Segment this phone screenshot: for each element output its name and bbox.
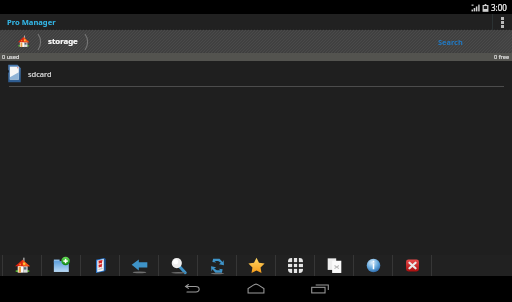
button[interactable]: Back [120, 255, 158, 276]
button[interactable]: Home [3, 255, 41, 276]
button[interactable]: Home [0, 30, 36, 53]
button[interactable]: Close [393, 255, 431, 276]
staticText: sdcard [28, 69, 52, 79]
button[interactable]: Apps [276, 255, 314, 276]
button[interactable]: More options [493, 14, 512, 30]
staticText: 3:00 [491, 2, 507, 13]
button[interactable]: sdcard [0, 61, 512, 87]
staticText: 0 used [2, 53, 20, 61]
staticText: storage [48, 36, 78, 47]
button[interactable]: Move [198, 255, 236, 276]
button[interactable]: Search [433, 33, 468, 51]
staticText: Pro Manager [7, 17, 56, 27]
staticText: Search [438, 37, 463, 47]
button[interactable]: Home [224, 276, 288, 302]
button[interactable]: Bookmarks [81, 255, 119, 276]
button[interactable]: Properties [354, 255, 392, 276]
button[interactable]: Favorites [237, 255, 275, 276]
button[interactable]: New folder [42, 255, 80, 276]
button[interactable]: Copy [315, 255, 353, 276]
button[interactable]: Recent apps [288, 276, 352, 302]
staticText: 0 free [494, 53, 510, 61]
button[interactable]: Back [160, 276, 224, 302]
button[interactable]: storage [43, 30, 83, 53]
button[interactable]: Search [159, 255, 197, 276]
